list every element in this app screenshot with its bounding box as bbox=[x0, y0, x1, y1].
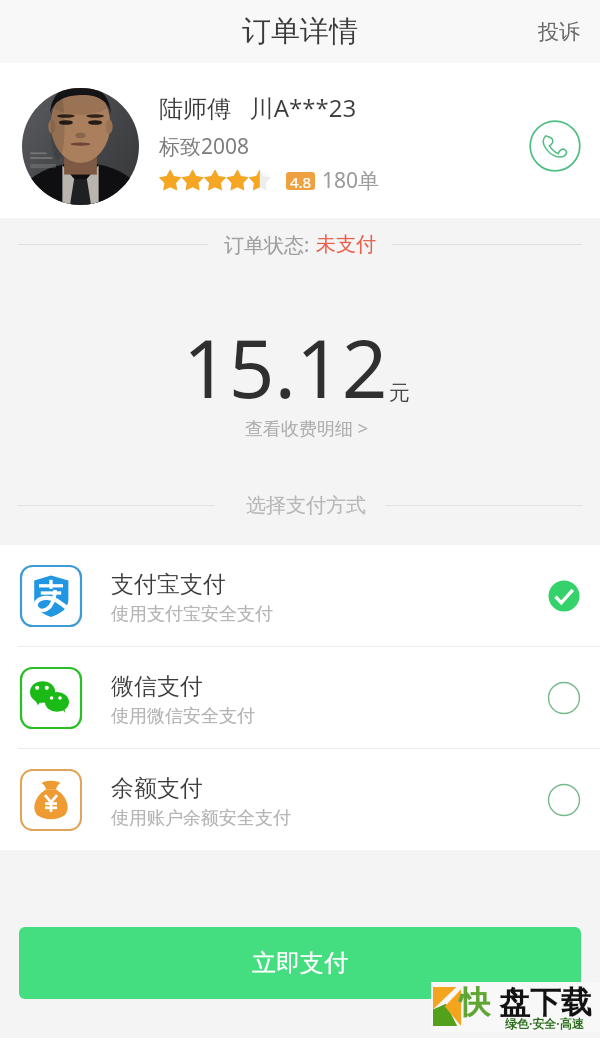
staticText: 支付宝支付 bbox=[111, 570, 226, 599]
button[interactable]: 立即支付 bbox=[19, 927, 581, 999]
staticText: 选择支付方式 bbox=[246, 493, 366, 517]
staticText: 查看收费明细 > bbox=[245, 416, 368, 441]
staticText: 微信支付 bbox=[111, 672, 203, 701]
button[interactable]: 支付宝支付 bbox=[0, 545, 600, 646]
button[interactable]: Select payment method bbox=[547, 681, 581, 715]
staticText: 快 bbox=[459, 983, 490, 1022]
button[interactable]: 投诉 bbox=[518, 5, 600, 59]
staticText: 使用账户余额安全支付 bbox=[111, 807, 291, 830]
staticText: 投诉 bbox=[538, 19, 580, 45]
staticText: 未支付 bbox=[316, 232, 376, 257]
button[interactable]: 查看收费明细 > bbox=[239, 410, 374, 447]
button[interactable]: 微信支付 bbox=[0, 647, 600, 748]
button[interactable]: 余额支付 bbox=[0, 749, 600, 850]
staticText: 元 bbox=[389, 380, 410, 406]
staticText: 订单状态: bbox=[224, 231, 310, 257]
staticText: 15.12 bbox=[183, 312, 388, 421]
staticText: 4.8 bbox=[290, 172, 312, 190]
staticText: 陆师傅 川A***23 bbox=[159, 91, 357, 124]
staticText: 180单 bbox=[322, 166, 380, 195]
button[interactable]: Call driver bbox=[529, 120, 581, 172]
staticText: 标致2008 bbox=[159, 132, 250, 161]
staticText: 绿色·安全·高速 bbox=[505, 1015, 584, 1031]
staticText: 余额支付 bbox=[111, 774, 203, 803]
staticText: 订单详情 bbox=[242, 13, 358, 50]
staticText: 盘下载 bbox=[499, 983, 592, 1022]
button[interactable]: Select payment method bbox=[547, 783, 581, 817]
staticText: 使用支付宝安全支付 bbox=[111, 603, 273, 626]
staticText: 立即支付 bbox=[252, 948, 348, 978]
staticText: 使用微信安全支付 bbox=[111, 705, 255, 728]
button[interactable]: Selected payment method bbox=[547, 579, 581, 613]
